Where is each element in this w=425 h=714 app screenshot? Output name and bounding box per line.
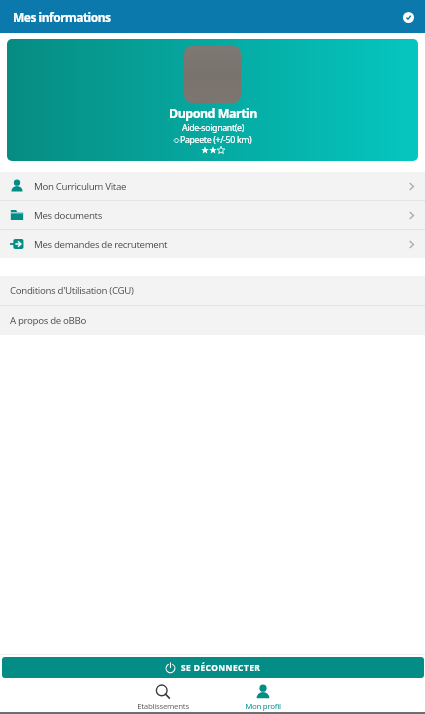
staticText: SE DÉCONNECTER [181, 662, 261, 673]
staticText: Dupond Martin [169, 105, 257, 122]
staticText: Mes documents [34, 209, 102, 222]
button[interactable]: Dupond Martin [7, 39, 418, 161]
staticText: Mon profil [245, 701, 281, 712]
staticText: Conditions d'Utilisation (CGU) [10, 284, 134, 297]
button[interactable]: SE DÉCONNECTER [2, 657, 424, 678]
button[interactable]: Mes demandes de recrutement [0, 230, 425, 258]
button[interactable]: A propos de oBBo [0, 306, 425, 335]
button[interactable]: Mon profil [213, 683, 313, 712]
button[interactable]: Mes documents [0, 201, 425, 229]
button[interactable]: Mon Curriculum Vitae [0, 172, 425, 200]
staticText: Mes demandes de recrutement [34, 238, 168, 251]
staticText: Etablissements [137, 701, 189, 712]
staticText: A propos de oBBo [10, 314, 86, 327]
staticText: Mon Curriculum Vitae [34, 180, 127, 193]
button[interactable]: Conditions d'Utilisation (CGU) [0, 276, 425, 305]
staticText: Aide-soignant(e) [182, 122, 244, 134]
staticText: Papeete (+/-50 km) [180, 134, 252, 146]
button[interactable]: Etablissements [113, 683, 213, 712]
staticText: Mes informations [13, 9, 111, 25]
button[interactable]: Validate [398, 7, 418, 27]
